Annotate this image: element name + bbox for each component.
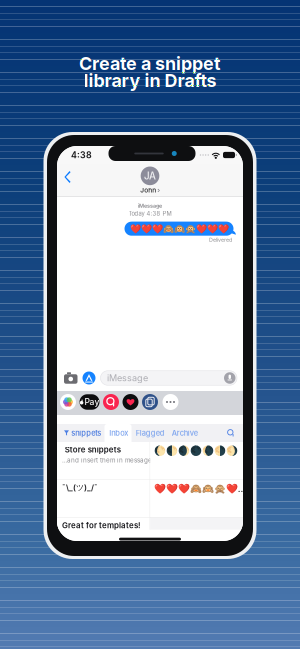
button[interactable]: Photos bbox=[60, 394, 76, 410]
button[interactable]: Digital Touch bbox=[122, 394, 138, 410]
staticText: …and insert them in messages bbox=[62, 456, 155, 464]
staticText: Archive bbox=[172, 428, 198, 437]
button[interactable]: Search bbox=[227, 424, 243, 442]
staticText: 🌔🌓🌒🌑🌘🌗🌖 bbox=[154, 445, 238, 456]
staticText: iMessage bbox=[138, 202, 162, 209]
staticText: Flagged bbox=[136, 428, 165, 437]
staticText: snippets bbox=[71, 428, 101, 437]
staticText: ❤️❤️❤️🙈🙉🙊❤️… bbox=[154, 483, 246, 494]
button[interactable]: Flagged bbox=[132, 424, 168, 442]
button[interactable]: ¯\_(ツ)_/¯ bbox=[57, 480, 243, 517]
staticText: John bbox=[140, 186, 156, 194]
button[interactable]: Music bbox=[103, 394, 119, 410]
staticText: JA bbox=[144, 170, 156, 182]
button[interactable]: Store snippets bbox=[57, 442, 243, 479]
button[interactable]: Drafts bbox=[142, 394, 158, 410]
staticText: Inbox bbox=[109, 428, 128, 437]
button[interactable]: Back bbox=[57, 165, 79, 189]
staticText: library in Drafts bbox=[83, 70, 216, 91]
button[interactable]: snippets bbox=[57, 424, 103, 442]
button[interactable]: JA bbox=[140, 164, 160, 194]
staticText: 4:38 bbox=[71, 150, 92, 160]
button[interactable]: Camera bbox=[64, 372, 77, 384]
staticText: Delivered bbox=[209, 237, 232, 243]
button[interactable]: iMessage apps bbox=[82, 371, 95, 384]
button[interactable]: Inbox bbox=[105, 424, 132, 442]
button[interactable]: Archive bbox=[168, 424, 201, 442]
staticText: Create a snippet bbox=[79, 53, 221, 74]
staticText: ❤️❤️❤️🙈🙉🙊❤️❤️❤️ bbox=[129, 223, 228, 234]
button[interactable]: Great for templates! bbox=[57, 518, 243, 530]
button[interactable]: Apple Pay bbox=[79, 394, 99, 410]
button[interactable]: More apps bbox=[162, 394, 178, 410]
staticText: Great for templates! bbox=[62, 521, 141, 530]
staticText: iMessage bbox=[107, 372, 148, 383]
staticText: ¯\_(ツ)_/¯ bbox=[62, 483, 98, 492]
staticText: Store snippets bbox=[65, 445, 121, 454]
staticText: Pay bbox=[84, 397, 99, 407]
staticText: Today 4:38 PM bbox=[128, 210, 171, 217]
